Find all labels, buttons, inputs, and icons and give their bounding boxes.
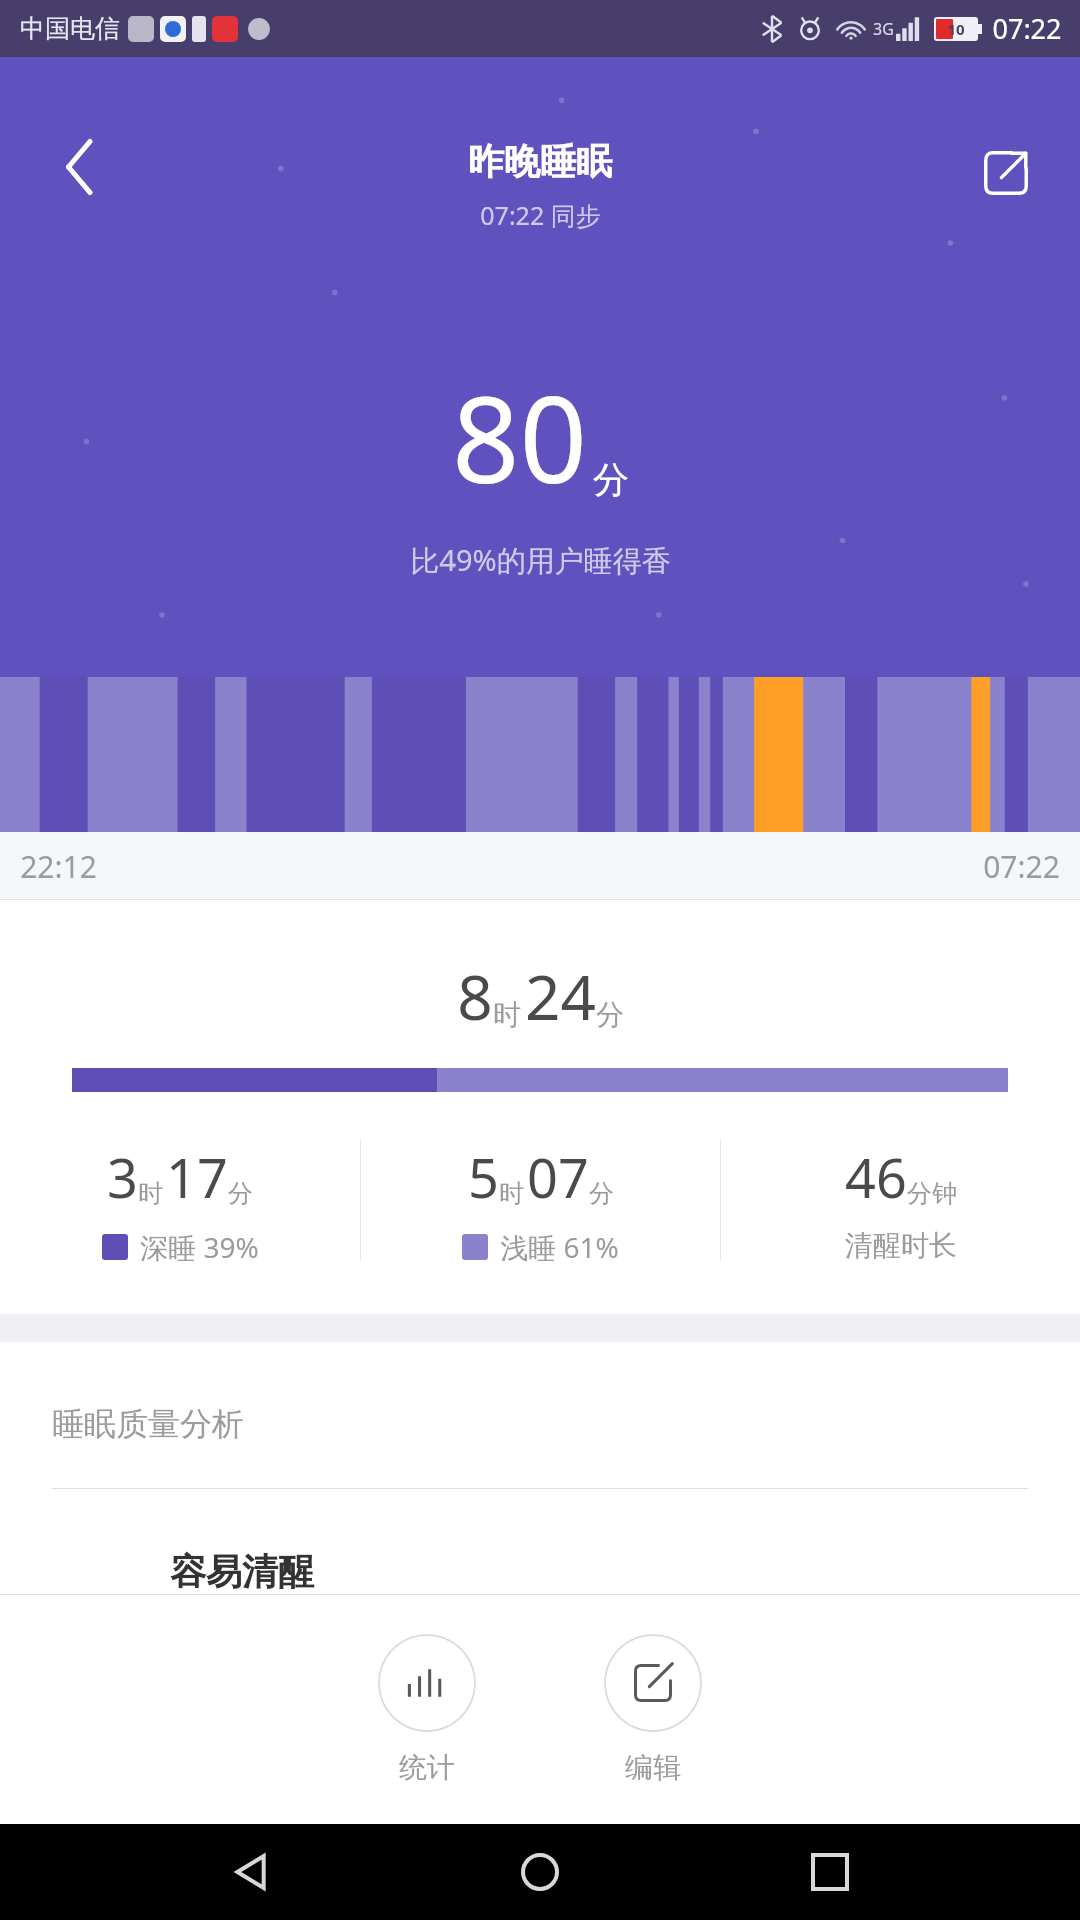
staticText: 分钟 (907, 1178, 957, 1209)
staticText: 07:22 (992, 10, 1062, 47)
button[interactable]: Statistics (372, 1628, 482, 1791)
staticText: 中国电信 (20, 13, 120, 44)
staticText: 分 (589, 1178, 614, 1209)
button[interactable]: Back (210, 1832, 290, 1912)
button[interactable]: 3 (0, 1140, 360, 1266)
staticText: 容易清醒 (170, 1549, 314, 1594)
staticText: 46 (845, 1140, 907, 1214)
staticText: 07:22 同步 (480, 198, 601, 232)
staticText: 时 (499, 1178, 524, 1209)
staticText: 07:22 (983, 846, 1060, 887)
staticText: 8 (457, 954, 493, 1038)
staticText: 24 (525, 954, 596, 1038)
staticText: 5 (468, 1140, 499, 1214)
staticText: 清醒时长 (845, 1228, 957, 1263)
button[interactable]: 5 (361, 1140, 720, 1266)
staticText: 睡眠质量分析 (52, 1404, 244, 1444)
staticText: 时 (493, 997, 521, 1032)
staticText: 分 (228, 1178, 253, 1209)
staticText: 浅睡 61% (500, 1228, 619, 1266)
staticText: 07 (527, 1140, 589, 1214)
staticText: 比49%的用户睡得香 (410, 540, 671, 580)
button[interactable]: Share (968, 135, 1044, 211)
button[interactable]: Recents (790, 1832, 870, 1912)
staticText: 编辑 (625, 1750, 681, 1785)
staticText: 分 (593, 457, 629, 502)
staticText: 3 (107, 1140, 138, 1214)
staticText: 17 (166, 1140, 228, 1214)
staticText: 时 (138, 1178, 163, 1209)
staticText: 80 (452, 357, 587, 518)
button[interactable]: 46 (721, 1140, 1080, 1263)
button[interactable]: Back (40, 127, 120, 207)
staticText: 统计 (399, 1750, 455, 1785)
staticText: 分 (596, 997, 624, 1032)
staticText: 深睡 39% (140, 1228, 259, 1266)
staticText: 3G (873, 18, 894, 40)
button[interactable]: Home (500, 1832, 580, 1912)
staticText: 22:12 (20, 846, 97, 887)
button[interactable]: Edit (598, 1628, 708, 1791)
staticText: 10 (947, 19, 965, 39)
staticText: 昨晚睡眠 (468, 139, 612, 184)
